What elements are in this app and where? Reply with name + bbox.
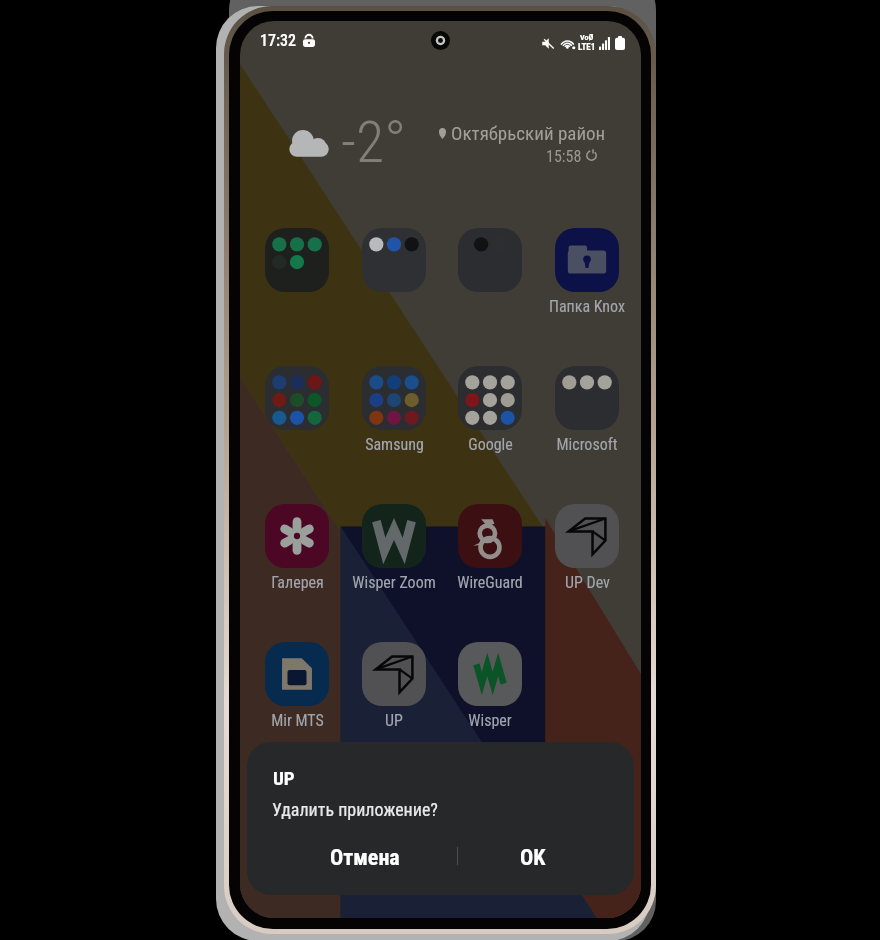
button[interactable]: Microsoft xyxy=(539,360,635,464)
button[interactable]: app xyxy=(249,360,345,464)
button[interactable]: app xyxy=(346,222,442,326)
staticText: WireGuard xyxy=(457,573,523,592)
staticText: Папка Knox xyxy=(549,297,625,316)
button[interactable]: Галерея xyxy=(249,498,345,602)
staticText: 17:32 xyxy=(260,31,297,50)
staticText: UP xyxy=(385,711,403,730)
button[interactable]: Wisper xyxy=(442,636,538,740)
staticText: Samsung xyxy=(365,435,424,454)
staticText: UP Dev xyxy=(565,573,610,592)
button[interactable]: Samsung xyxy=(346,360,442,464)
staticText: VoØ xyxy=(580,33,594,42)
button[interactable]: UP Dev xyxy=(539,498,635,602)
button[interactable]: Wisper Zoom xyxy=(346,498,442,602)
staticText: LTE1 xyxy=(578,42,596,53)
staticText: Октябрьский район xyxy=(451,122,606,144)
button[interactable]: Папка Knox xyxy=(539,222,635,326)
button[interactable]: app xyxy=(442,222,538,326)
staticText: 15:58 xyxy=(546,147,582,166)
button[interactable]: Mir MTS xyxy=(249,636,345,740)
button[interactable]: OK xyxy=(450,834,618,882)
staticText: Удалить приложение? xyxy=(272,799,438,820)
button[interactable]: app xyxy=(249,222,345,326)
staticText: Google xyxy=(468,435,513,454)
staticText: Microsoft xyxy=(556,435,618,454)
button[interactable]: UP xyxy=(346,636,442,740)
button[interactable]: WireGuard xyxy=(442,498,538,602)
button[interactable]: Google xyxy=(442,360,538,464)
staticText: UP xyxy=(273,767,295,789)
staticText: -2° xyxy=(341,108,407,176)
staticText: Wisper Zoom xyxy=(352,573,436,592)
button[interactable]: Отмена xyxy=(263,834,465,882)
staticText: Отмена xyxy=(330,845,400,871)
staticText: OK xyxy=(520,845,546,871)
staticText: Mir MTS xyxy=(271,711,324,730)
staticText: Wisper xyxy=(468,711,512,730)
staticText: Галерея xyxy=(271,573,324,592)
